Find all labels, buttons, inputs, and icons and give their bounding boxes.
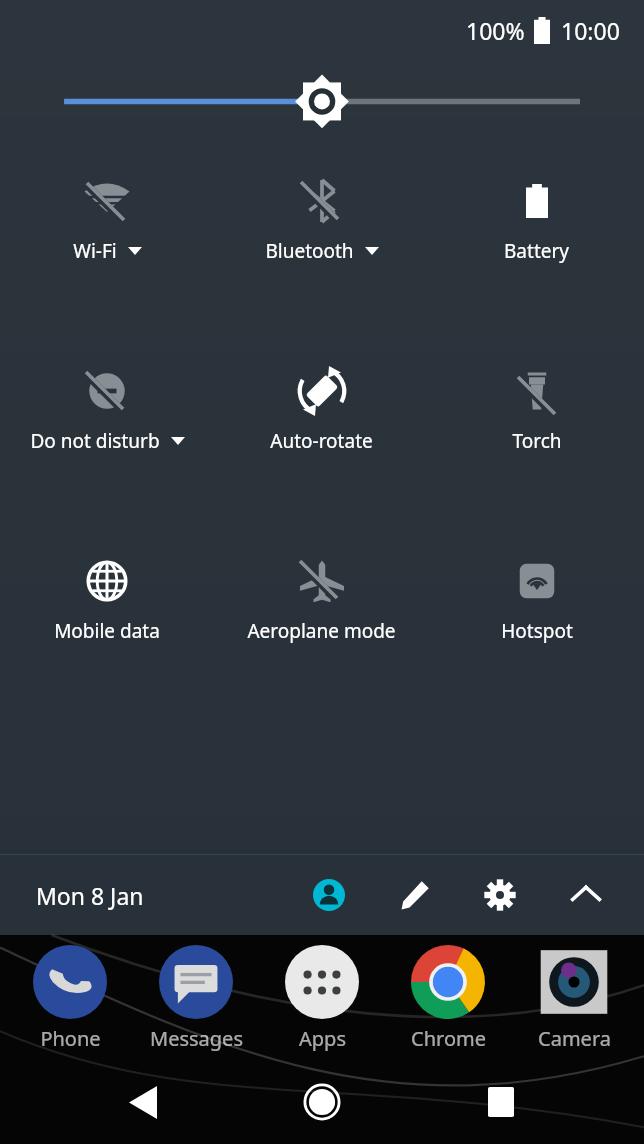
staticText: Aeroplane mode bbox=[247, 618, 396, 644]
button[interactable]: Chrome bbox=[392, 945, 504, 1052]
button[interactable]: Phone bbox=[14, 945, 126, 1052]
staticText: Battery bbox=[504, 238, 569, 264]
staticText: Hotspot bbox=[501, 618, 573, 644]
staticText: Wi-Fi bbox=[73, 238, 117, 264]
button[interactable]: Hotspot bbox=[429, 544, 644, 672]
staticText: Apps bbox=[299, 1025, 346, 1052]
button[interactable]: Camera bbox=[518, 945, 630, 1052]
staticText: Auto-rotate bbox=[270, 428, 373, 454]
button[interactable]: Settings bbox=[476, 871, 524, 919]
button[interactable]: Torch bbox=[429, 354, 644, 482]
button[interactable]: Bluetooth bbox=[214, 164, 429, 292]
staticText: 100% bbox=[466, 15, 525, 46]
staticText: Mobile data bbox=[54, 618, 160, 644]
button[interactable]: Mon 8 Jan bbox=[36, 880, 144, 911]
button[interactable]: Mobile data bbox=[0, 544, 214, 672]
button[interactable]: Home bbox=[286, 1066, 358, 1138]
staticText: Phone bbox=[40, 1025, 101, 1052]
staticText: Camera bbox=[538, 1025, 611, 1052]
button[interactable]: Wi-Fi bbox=[0, 164, 214, 292]
staticText: 10:00 bbox=[561, 15, 620, 46]
button[interactable]: Battery bbox=[429, 164, 644, 292]
button[interactable]: Do not disturb bbox=[0, 354, 214, 482]
button[interactable]: Messages bbox=[140, 945, 252, 1052]
button[interactable]: Collapse bbox=[562, 871, 610, 919]
staticText: Messages bbox=[150, 1025, 243, 1052]
button[interactable]: Recents bbox=[465, 1066, 537, 1138]
staticText: Do not disturb bbox=[30, 428, 160, 454]
staticText: Torch bbox=[512, 428, 562, 454]
button[interactable]: Brightness bbox=[0, 60, 644, 116]
button[interactable]: Edit bbox=[391, 871, 439, 919]
staticText: Chrome bbox=[411, 1025, 486, 1052]
button[interactable]: Back bbox=[107, 1066, 179, 1138]
staticText: Bluetooth bbox=[265, 238, 354, 264]
button[interactable]: Aeroplane mode bbox=[214, 544, 429, 672]
button[interactable]: Auto-rotate bbox=[214, 354, 429, 482]
staticText: Mon 8 Jan bbox=[36, 880, 144, 911]
button[interactable]: Apps bbox=[266, 945, 378, 1052]
button[interactable]: User bbox=[305, 871, 353, 919]
